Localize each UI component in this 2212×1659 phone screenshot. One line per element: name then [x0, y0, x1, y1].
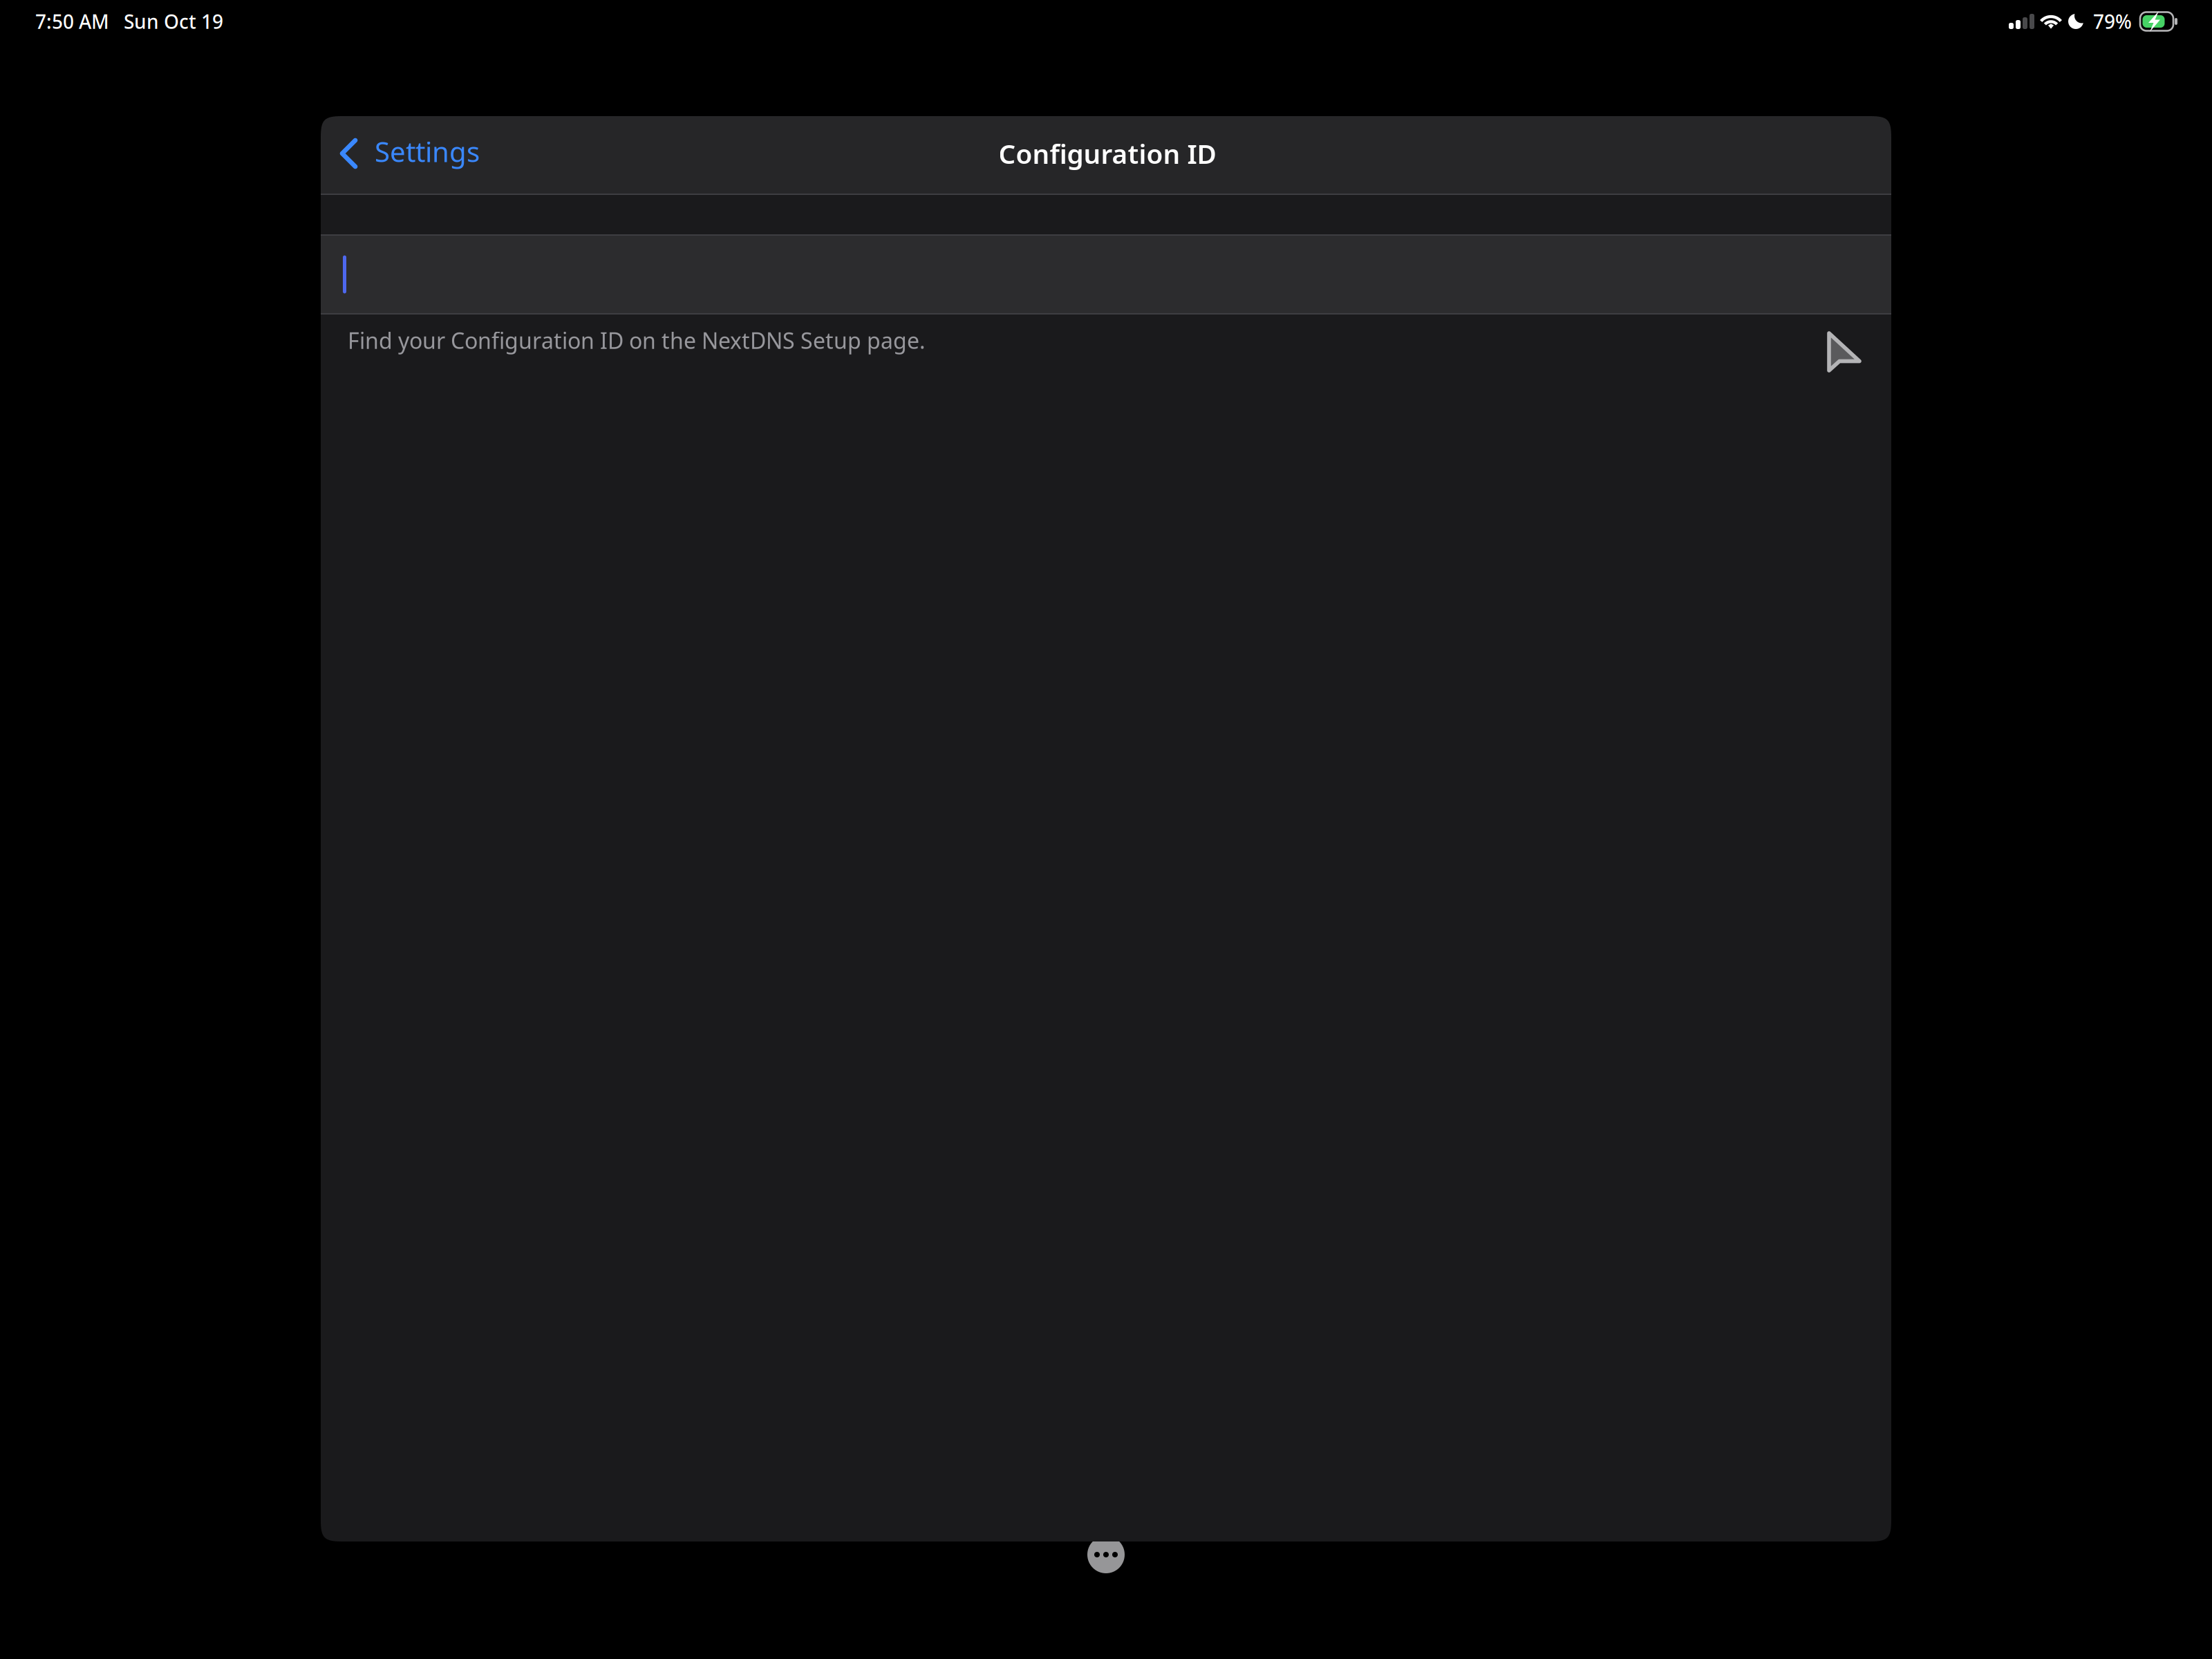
staticText: 7:50 AM: [35, 9, 109, 34]
staticText: Settings: [375, 133, 480, 170]
staticText: Find your Configuration ID on the NextDN…: [348, 326, 926, 355]
staticText: Sun Oct 19: [124, 9, 223, 34]
staticText: 79%: [2093, 9, 2132, 34]
button[interactable]: Settings: [321, 116, 494, 194]
button[interactable]: Configuration ID text field: [321, 236, 1891, 313]
staticText: Configuration ID: [999, 136, 1216, 171]
button[interactable]: Multitasking controls: [1087, 1536, 1125, 1573]
